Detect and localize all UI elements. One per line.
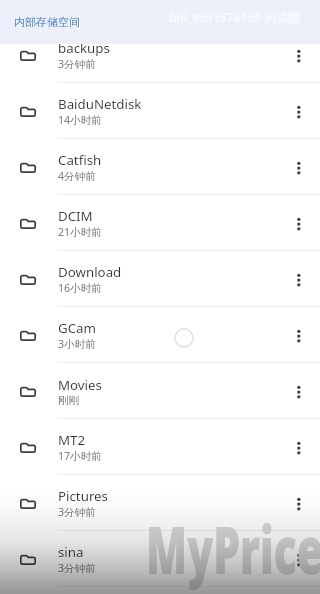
staticText: GCam xyxy=(58,319,96,337)
button[interactable]: More options xyxy=(277,27,320,83)
button[interactable]: MT2 xyxy=(0,419,320,475)
button[interactable]: More options xyxy=(277,83,320,139)
staticText: BaiduNetdisk xyxy=(58,95,142,113)
staticText: 21小时前 xyxy=(58,225,102,239)
button[interactable]: Download xyxy=(0,251,320,307)
staticText: backups xyxy=(58,39,110,57)
staticText: Download xyxy=(58,263,122,281)
button[interactable]: More options xyxy=(277,307,320,363)
button[interactable]: DCIM xyxy=(0,195,320,251)
staticText: 内部存储空间 xyxy=(14,15,80,29)
staticText: MyPrice xyxy=(146,505,320,594)
staticText: 刚刚 xyxy=(58,394,80,407)
staticText: 14小时前 xyxy=(58,113,102,127)
button[interactable]: More options xyxy=(277,419,320,475)
staticText: 3分钟前 xyxy=(58,505,96,519)
button[interactable]: More options xyxy=(277,251,320,307)
button[interactable]: More options xyxy=(277,139,320,195)
staticText: bili_9931574195 的视频 xyxy=(169,9,301,25)
button[interactable]: More options xyxy=(277,363,320,419)
staticText: 3分钟前 xyxy=(58,561,96,575)
button[interactable]: BaiduNetdisk xyxy=(0,83,320,139)
staticText: Catfish xyxy=(58,151,102,169)
button[interactable]: GCam xyxy=(0,307,320,363)
staticText: 17小时前 xyxy=(58,449,102,463)
button[interactable]: Movies xyxy=(0,363,320,419)
button[interactable]: sina xyxy=(0,531,320,587)
staticText: sina xyxy=(58,543,84,561)
button[interactable]: More options xyxy=(277,531,320,587)
staticText: 4分钟前 xyxy=(58,169,96,183)
staticText: 3分钟前 xyxy=(58,57,96,71)
button[interactable]: Pictures xyxy=(0,475,320,531)
button[interactable]: More options xyxy=(277,195,320,251)
staticText: Movies xyxy=(58,376,102,394)
staticText: MT2 xyxy=(58,431,86,449)
button[interactable]: backups xyxy=(0,27,320,83)
staticText: 3小时前 xyxy=(58,337,96,351)
staticText: 16小时前 xyxy=(58,281,102,295)
staticText: DCIM xyxy=(58,207,93,225)
button[interactable]: More options xyxy=(277,475,320,531)
staticText: Pictures xyxy=(58,487,108,505)
button[interactable]: Catfish xyxy=(0,139,320,195)
